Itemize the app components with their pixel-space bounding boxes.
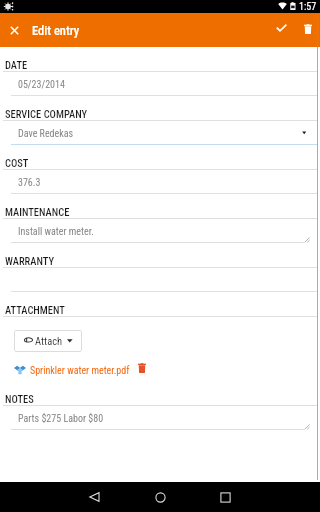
staticText: Attach	[35, 335, 63, 347]
button[interactable]: Dave Redekas	[0, 121, 320, 145]
button[interactable]: 376.3	[0, 170, 320, 194]
button[interactable]: Remove attachment	[134, 360, 150, 376]
button[interactable]: Close	[0, 16, 29, 45]
button[interactable]: Parts $275 Labor $80	[0, 406, 320, 430]
staticText: MAINTENANCE	[5, 206, 70, 218]
staticText: Edit entry	[32, 23, 80, 38]
button[interactable]: Delete	[291, 13, 320, 47]
staticText: 05/23/2014	[18, 79, 65, 91]
button[interactable]	[0, 268, 320, 292]
button[interactable]: Sprinkler water meter.pdf	[30, 365, 130, 377]
button[interactable]: Install water meter.	[0, 219, 320, 243]
staticText: COST	[5, 157, 29, 169]
button[interactable]: Recents	[210, 482, 240, 512]
staticText: Dave Redekas	[18, 128, 74, 140]
button[interactable]: Home	[145, 482, 175, 512]
staticText: Install water meter.	[18, 226, 94, 238]
staticText: 376.3	[18, 177, 41, 189]
staticText: ATTACHMENT	[5, 304, 65, 316]
staticText: WARRANTY	[5, 255, 55, 267]
button[interactable]: Back	[79, 482, 109, 512]
staticText: SERVICE COMPANY	[5, 108, 88, 120]
staticText: NOTES	[5, 393, 34, 405]
staticText: DATE	[5, 59, 28, 71]
button[interactable]: 05/23/2014	[0, 72, 320, 96]
button[interactable]: Save	[264, 13, 298, 47]
staticText: 1:57	[299, 1, 317, 13]
staticText: Parts $275 Labor $80	[18, 413, 104, 425]
button[interactable]: Attach	[14, 330, 82, 352]
